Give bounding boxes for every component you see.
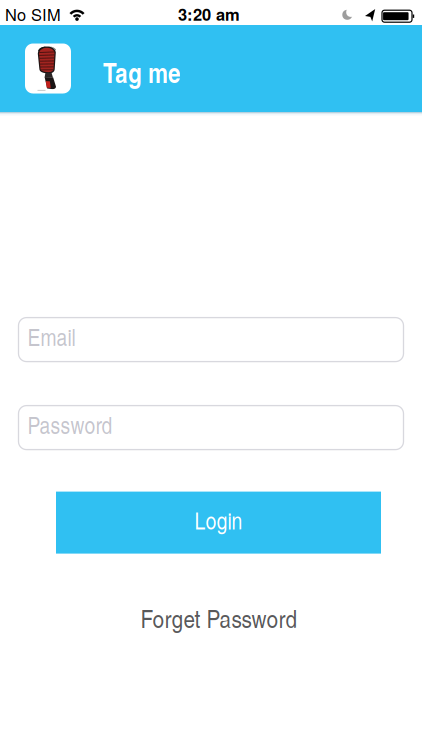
staticText: Password — [27, 408, 112, 441]
staticText: Tag me — [103, 53, 181, 91]
staticText: Login — [194, 503, 242, 536]
staticText: No SIM — [5, 2, 61, 26]
staticText: Email — [27, 320, 75, 353]
staticText: 3:20 am — [178, 2, 240, 26]
button[interactable]: Email — [18, 318, 403, 362]
button[interactable]: Login — [56, 492, 381, 554]
staticText: Forget Password — [140, 600, 297, 635]
button[interactable]: Password — [18, 406, 403, 450]
button[interactable]: Forget Password — [140, 600, 297, 635]
